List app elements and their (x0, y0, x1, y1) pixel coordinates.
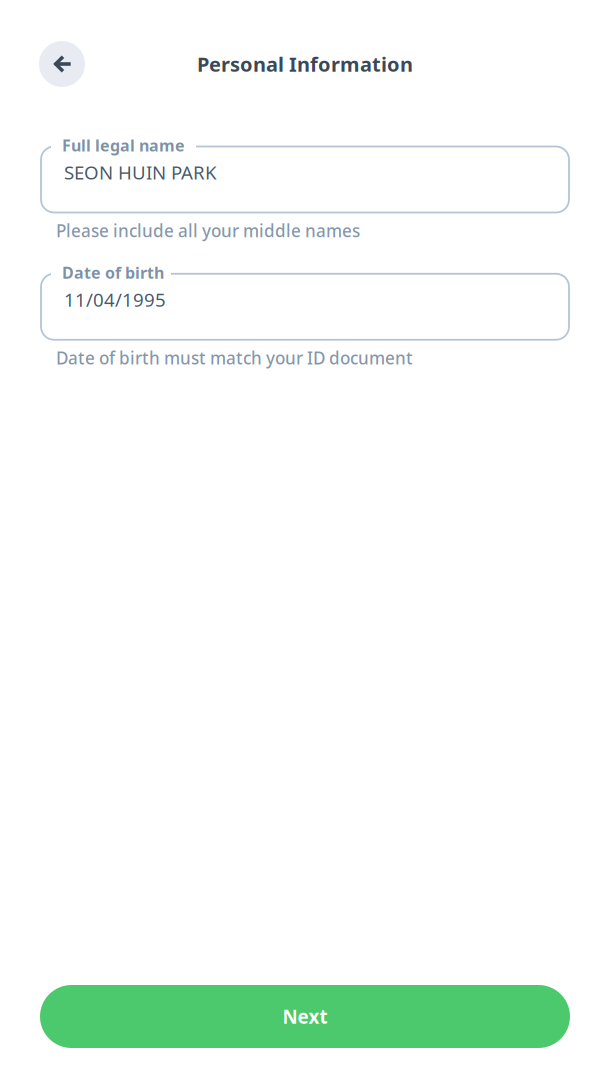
staticText: Full legal name (62, 134, 185, 156)
button[interactable]: Back (39, 41, 85, 87)
staticText: 11/04/1995 (64, 287, 166, 312)
staticText: Date of birth (62, 262, 164, 283)
button[interactable]: Date of birth (41, 260, 569, 335)
staticText: SEON HUIN PARK (64, 159, 217, 185)
staticText: Date of birth must match your ID documen… (56, 346, 413, 369)
button[interactable]: Next (40, 985, 570, 1048)
staticText: Next (282, 1004, 327, 1029)
staticText: Personal Information (197, 50, 413, 78)
button[interactable]: Full legal name (41, 133, 569, 208)
staticText: Please include all your middle names (56, 219, 360, 242)
